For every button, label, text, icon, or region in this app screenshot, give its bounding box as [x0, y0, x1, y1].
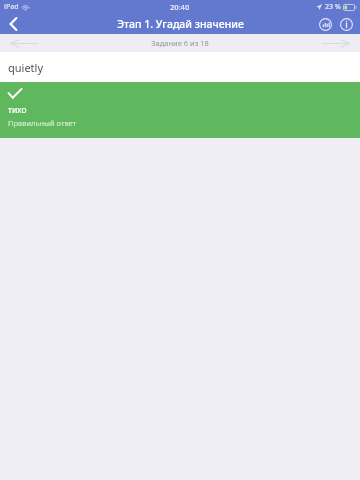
staticText: 20:40 — [170, 2, 190, 12]
button[interactable]: Statistics — [317, 16, 333, 32]
button[interactable]: Back — [0, 14, 26, 34]
button[interactable]: Next task — [312, 34, 360, 52]
button[interactable]: Info — [338, 16, 354, 32]
button[interactable]: тихо — [0, 82, 360, 138]
button[interactable]: Previous task — [0, 34, 48, 52]
staticText: iPad — [4, 2, 19, 12]
staticText: 23 % — [325, 2, 341, 12]
staticText: quietly — [8, 60, 44, 75]
staticText: Правильный ответ — [8, 118, 77, 128]
staticText: Задание 6 из 18 — [151, 38, 209, 48]
staticText: тихо — [8, 104, 27, 116]
staticText: Этап 1. Угадай значение — [117, 17, 244, 31]
